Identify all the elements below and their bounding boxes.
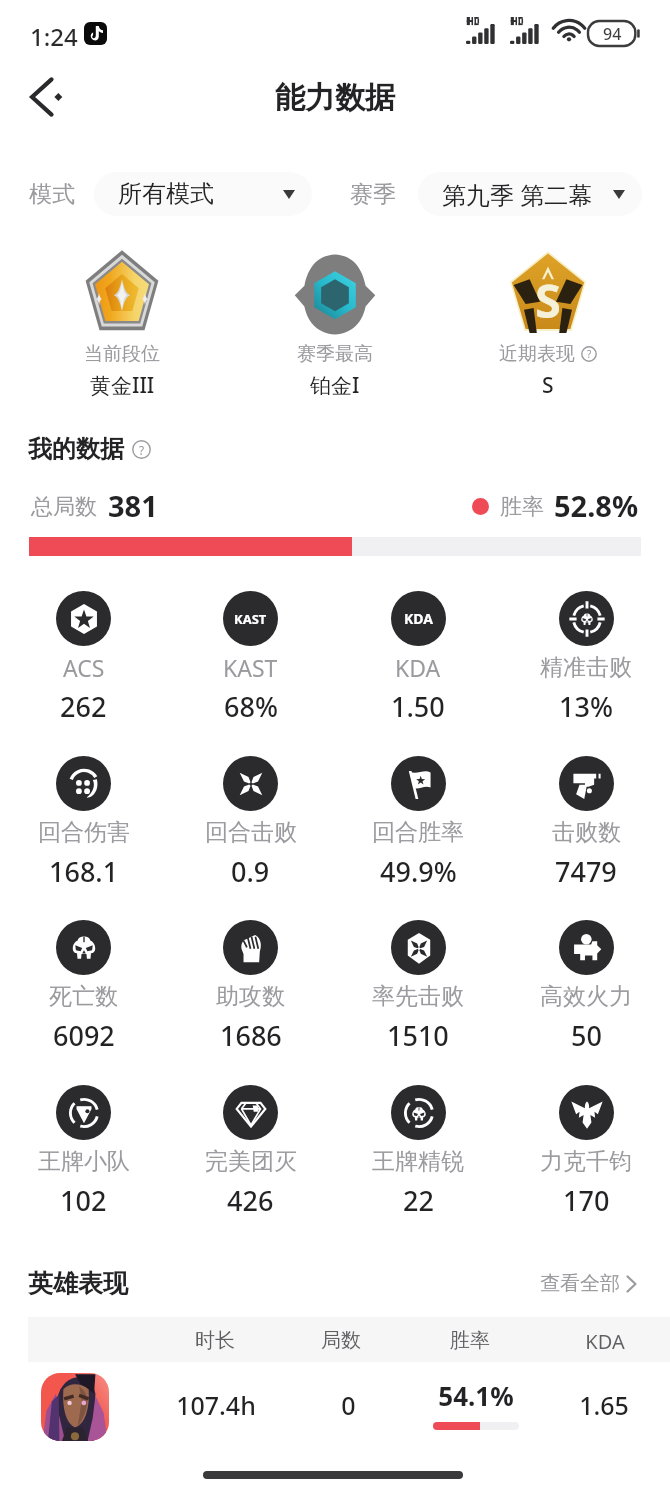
button[interactable]: 王牌精锐: [334, 1085, 502, 1216]
staticText: 我的数据: [28, 434, 124, 464]
staticText: 铂金I: [310, 371, 360, 400]
staticText: 高效火力: [540, 982, 632, 1011]
staticText: 所有模式: [118, 179, 214, 209]
staticText: 1510: [387, 1017, 449, 1051]
button[interactable]: 精准击败: [502, 591, 670, 722]
staticText: 168.1: [49, 853, 119, 887]
staticText: 模式: [29, 180, 75, 209]
button[interactable]: 所有模式: [94, 172, 312, 216]
button[interactable]: ACS: [0, 591, 167, 722]
staticText: 黄金III: [90, 371, 155, 400]
button[interactable]: 率先击败: [334, 920, 502, 1051]
staticText: 率先击败: [372, 982, 464, 1011]
staticText: 22: [403, 1182, 434, 1216]
staticText: S: [542, 371, 554, 400]
button[interactable]: 力克千钧: [502, 1085, 670, 1216]
staticText: 完美团灭: [205, 1147, 297, 1176]
staticText: 426: [227, 1182, 274, 1216]
staticText: 近期表现: [499, 342, 575, 366]
staticText: 107.4h: [176, 1388, 256, 1422]
button[interactable]: Back: [21, 69, 77, 125]
staticText: ACS: [63, 652, 105, 683]
staticText: 49.9%: [380, 853, 457, 887]
staticText: KDA: [585, 1328, 625, 1355]
button[interactable]: 第九季 第二幕: [418, 172, 642, 216]
staticText: 死亡数: [49, 982, 118, 1011]
staticText: 6092: [53, 1017, 115, 1051]
staticText: 0: [341, 1388, 356, 1422]
staticText: 英雄表现: [28, 1268, 128, 1299]
button[interactable]: 助攻数: [167, 920, 334, 1051]
staticText: 时长: [195, 1328, 235, 1353]
button[interactable]: 回合胜率: [334, 756, 502, 887]
staticText: 50: [571, 1017, 602, 1051]
button[interactable]: 完美团灭: [167, 1085, 334, 1216]
button[interactable]: 查看全部: [540, 1271, 637, 1296]
staticText: 王牌精锐: [372, 1147, 464, 1176]
staticText: 54.1%: [438, 1378, 514, 1413]
staticText: 102: [60, 1182, 107, 1216]
staticText: 68%: [224, 688, 278, 722]
button[interactable]: 击败数: [502, 756, 670, 887]
staticText: KDA: [395, 652, 441, 683]
button[interactable]: 回合伤害: [0, 756, 167, 887]
staticText: 94: [603, 23, 622, 45]
button[interactable]: 死亡数: [0, 920, 167, 1051]
staticText: 第九季 第二幕: [442, 178, 593, 211]
staticText: 1.65: [579, 1388, 629, 1422]
staticText: 回合击败: [205, 818, 297, 847]
staticText: 力克千钧: [540, 1147, 632, 1176]
staticText: 回合胜率: [372, 818, 464, 847]
staticText: 52.8%: [554, 486, 639, 525]
staticText: 1.50: [391, 688, 445, 722]
staticText: 精准击败: [540, 653, 632, 682]
staticText: KAST: [223, 652, 278, 683]
staticText: 局数: [321, 1328, 361, 1353]
staticText: 当前段位: [84, 342, 160, 366]
staticText: ?: [587, 347, 592, 361]
staticText: 王牌小队: [38, 1147, 130, 1176]
staticText: S: [535, 268, 561, 332]
button[interactable]: 回合击败: [167, 756, 334, 887]
staticText: 170: [563, 1182, 610, 1216]
button[interactable]: 高效火力: [502, 920, 670, 1051]
staticText: 总局数: [31, 493, 97, 521]
staticText: 胜率: [500, 493, 544, 521]
staticText: 7479: [555, 853, 617, 887]
button[interactable]: KAST: [167, 591, 334, 722]
button[interactable]: 当前段位: [16, 251, 228, 400]
staticText: 262: [60, 688, 107, 722]
button[interactable]: 王牌小队: [0, 1085, 167, 1216]
staticText: 赛季: [350, 180, 396, 209]
staticText: 381: [108, 486, 158, 525]
staticText: 1:24: [30, 20, 78, 53]
button[interactable]: KDA: [334, 591, 502, 722]
staticText: 13%: [559, 688, 613, 722]
staticText: 赛季最高: [297, 342, 373, 366]
staticText: 胜率: [450, 1328, 490, 1353]
staticText: KDA: [404, 609, 433, 628]
staticText: 击败数: [552, 818, 621, 847]
staticText: 查看全部: [540, 1271, 620, 1296]
staticText: KAST: [234, 610, 267, 628]
staticText: 能力数据: [275, 79, 395, 117]
staticText: 0.9: [231, 853, 270, 887]
staticText: 助攻数: [216, 982, 285, 1011]
button[interactable]: S: [441, 251, 654, 400]
staticText: 1686: [220, 1017, 282, 1051]
button[interactable]: 赛季最高: [228, 251, 441, 400]
staticText: 回合伤害: [38, 818, 130, 847]
staticText: ?: [139, 442, 145, 458]
